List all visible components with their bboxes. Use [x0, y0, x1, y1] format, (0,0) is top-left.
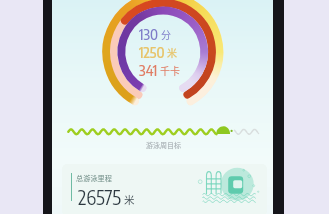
staticText: 26575	[78, 185, 121, 209]
staticText: 总游泳里程	[76, 173, 112, 183]
staticText: 341	[139, 61, 158, 79]
staticText: 米	[124, 192, 135, 207]
staticText: 游泳周目标	[146, 140, 181, 150]
staticText: 千卡	[160, 63, 180, 77]
staticText: 分	[161, 27, 171, 41]
button[interactable]: 总游泳里程	[62, 164, 267, 214]
staticText: 1250	[139, 43, 165, 61]
staticText: 130	[139, 25, 159, 43]
staticText: 米	[167, 45, 177, 59]
